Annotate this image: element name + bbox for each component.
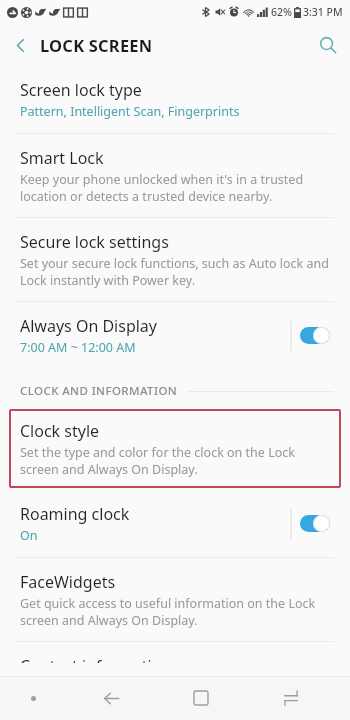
staticText: 7:00 AM ~ 12:00 AM <box>20 339 136 356</box>
staticText: Set the type and color for the clock on … <box>20 444 329 477</box>
button[interactable]: Clock style <box>9 409 341 488</box>
button[interactable]: Always On Display <box>0 302 350 369</box>
button[interactable]: Recents <box>246 676 336 720</box>
button[interactable]: Screen lock type <box>0 66 350 133</box>
staticText: 3:31 PM <box>303 5 343 19</box>
staticText: Get quick access to useful information o… <box>20 595 338 628</box>
staticText: Pattern, Intelligent Scan, Fingerprints <box>20 103 240 120</box>
button[interactable]: Contact information <box>0 642 350 676</box>
button[interactable]: Back <box>0 25 40 65</box>
staticText: LOCK SCREEN <box>40 34 153 56</box>
staticText: On <box>20 527 38 544</box>
button[interactable]: Home <box>156 676 246 720</box>
staticText: Contact information <box>20 655 172 663</box>
staticText: CLOCK AND INFORMATION <box>20 383 178 399</box>
button[interactable]: Back <box>66 676 156 720</box>
staticText: Keep your phone unlocked when it's in a … <box>20 171 338 204</box>
staticText: Roaming clock <box>20 503 130 525</box>
staticText: Secure lock settings <box>20 231 169 253</box>
button[interactable]: Smart Lock <box>0 134 350 217</box>
staticText: Set your secure lock functions, such as … <box>20 255 338 288</box>
button[interactable]: FaceWidgets <box>0 558 350 641</box>
button[interactable]: Roaming clock <box>0 490 350 557</box>
button[interactable]: Search <box>306 24 350 66</box>
button[interactable]: Toggle <box>292 507 338 540</box>
staticText: Always On Display <box>20 315 158 337</box>
staticText: Screen lock type <box>20 79 142 101</box>
button[interactable]: Secure lock settings <box>0 218 350 301</box>
staticText: FaceWidgets <box>20 571 116 593</box>
staticText: Smart Lock <box>20 147 104 169</box>
button[interactable]: Toggle <box>292 319 338 352</box>
staticText: Clock style <box>20 420 100 442</box>
staticText: 62% <box>271 5 292 19</box>
